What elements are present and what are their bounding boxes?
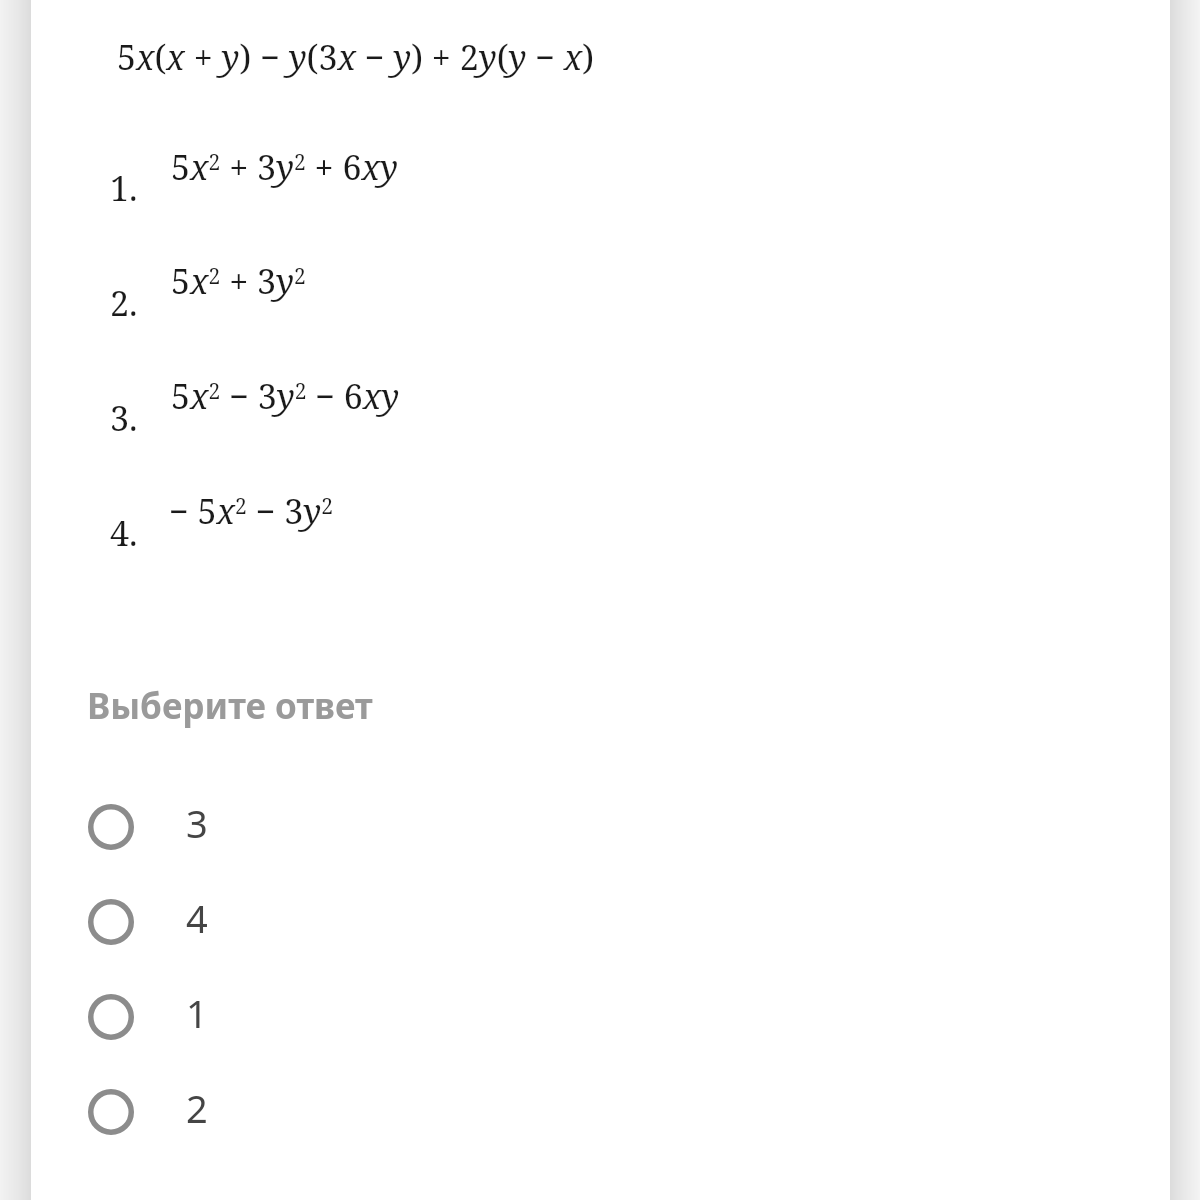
other: Select answer 4 xyxy=(88,899,134,945)
other: Select answer 1 xyxy=(88,994,134,1040)
button[interactable]: Select answer 2 xyxy=(60,1074,380,1150)
staticText: 1 xyxy=(186,987,208,1039)
other: Select answer 2 xyxy=(88,1089,134,1135)
staticText: 4 xyxy=(186,892,208,944)
staticText: Выберите ответ xyxy=(87,682,373,730)
staticText: 2. xyxy=(110,280,138,326)
button[interactable]: Select answer 3 xyxy=(60,789,380,865)
staticText: 3 xyxy=(186,797,208,849)
staticText: 2 xyxy=(186,1082,208,1134)
staticText: 4. xyxy=(110,510,138,556)
staticText: 5x2 + 3y2 + 6xy xyxy=(171,144,398,190)
button[interactable]: Select answer 4 xyxy=(60,884,380,960)
staticText: 5x2 − 3y2 − 6xy xyxy=(171,373,400,419)
staticText: 5x2 + 3y2 xyxy=(171,258,306,304)
staticText: − 5x2 − 3y2 xyxy=(169,488,333,534)
button[interactable]: Select answer 1 xyxy=(60,979,380,1055)
staticText: 1. xyxy=(110,165,138,211)
staticText: 3. xyxy=(110,395,138,441)
other: Select answer 3 xyxy=(88,804,134,850)
staticText: 5x(x + y) − y(3x − y) + 2y(y − x) xyxy=(117,34,595,80)
